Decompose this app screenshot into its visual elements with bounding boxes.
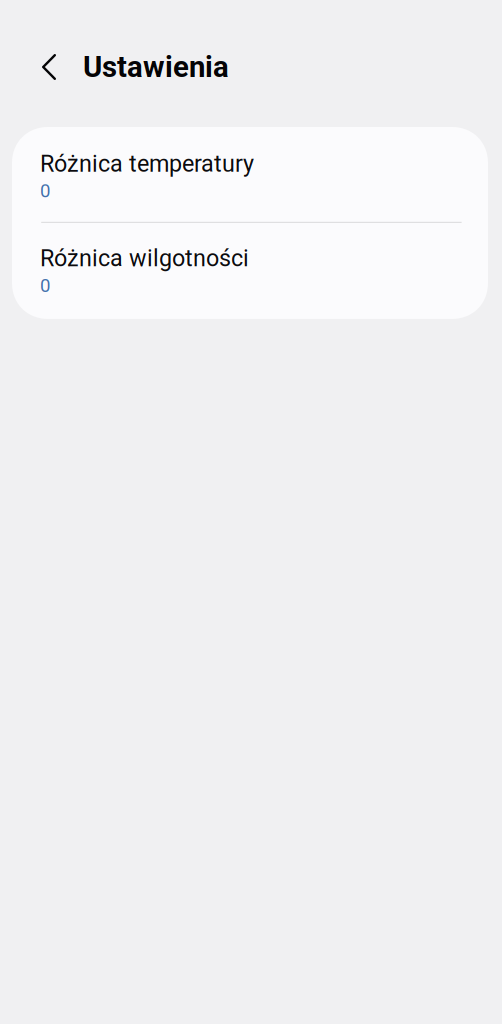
button[interactable]: Back	[0, 0, 83, 127]
staticText: Różnica wilgotności	[40, 245, 249, 272]
staticText: Różnica temperatury	[40, 150, 254, 177]
staticText: 0	[40, 180, 50, 202]
button[interactable]: Różnica temperatury	[12, 127, 488, 222]
staticText: 0	[40, 275, 50, 296]
staticText: Ustawienia	[83, 50, 229, 84]
button[interactable]: Różnica wilgotności	[12, 223, 488, 319]
